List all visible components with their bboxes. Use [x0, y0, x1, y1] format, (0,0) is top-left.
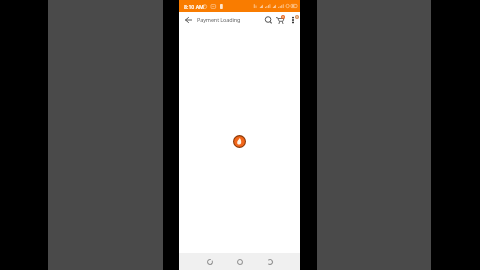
- button[interactable]: More options: [287, 13, 299, 27]
- button[interactable]: Cart: [274, 13, 286, 27]
- button[interactable]: Recents: [258, 253, 282, 270]
- button[interactable]: Search: [262, 14, 274, 26]
- button[interactable]: Back: [198, 253, 222, 270]
- staticText: 8:10 AM: [184, 3, 204, 10]
- button[interactable]: Home: [228, 253, 252, 270]
- staticText: Payment Loading: [197, 16, 241, 23]
- button[interactable]: Back: [181, 12, 195, 28]
